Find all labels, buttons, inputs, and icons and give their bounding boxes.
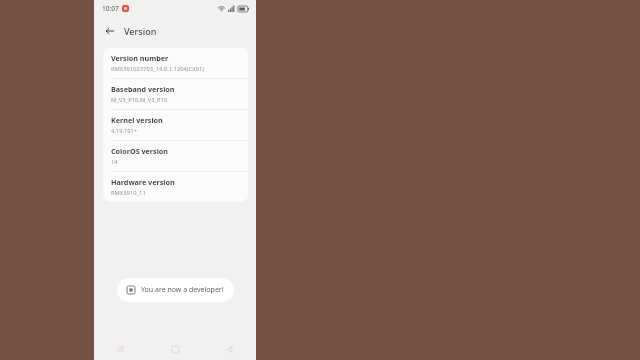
button[interactable]: Version number	[103, 48, 248, 78]
staticText: Version	[124, 25, 157, 37]
staticText: Version number	[111, 53, 169, 63]
staticText: You are now a developer!	[141, 285, 224, 295]
button[interactable]: Baseband version	[103, 79, 248, 109]
button[interactable]: Back	[101, 22, 119, 40]
staticText: ColorOS version	[111, 146, 168, 156]
staticText: RMX391023703_14.0.1.1204(CX01)	[111, 65, 205, 73]
staticText: Hardware version	[111, 177, 175, 187]
staticText: Kernel version	[111, 115, 163, 125]
staticText: Baseband version	[111, 84, 175, 94]
staticText: 10:07	[102, 4, 119, 13]
button[interactable]: Kernel version	[103, 110, 248, 140]
button[interactable]: You are now a developer!	[117, 278, 234, 302]
staticText: 14	[111, 158, 118, 166]
button[interactable]: Hardware version	[103, 172, 248, 202]
button[interactable]: ColorOS version	[103, 141, 248, 171]
staticText: RMX3910_11	[111, 189, 146, 197]
staticText: 4.19.191+	[111, 127, 138, 135]
staticText: M_V3_P10,M_V3_P10	[111, 96, 168, 104]
